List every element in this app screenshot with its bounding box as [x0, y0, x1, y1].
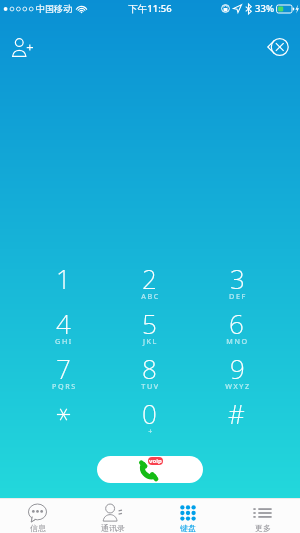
staticText: + — [148, 426, 154, 436]
button[interactable]: 4 — [20, 306, 106, 351]
button[interactable]: 5 — [106, 306, 193, 351]
staticText: TUV — [141, 381, 160, 391]
button[interactable]: 1 — [20, 261, 106, 306]
staticText: GHI — [55, 336, 73, 346]
staticText: voip — [149, 457, 162, 465]
staticText: 中国移动 — [36, 3, 72, 14]
button[interactable]: 信息 — [0, 499, 75, 533]
button[interactable]: Call — [97, 456, 203, 483]
button[interactable]: Delete — [261, 30, 295, 64]
staticText: WXYZ — [225, 381, 251, 391]
button[interactable]: 3 — [193, 261, 280, 306]
button[interactable]: 9 — [193, 351, 280, 396]
staticText: 下午11:56 — [128, 2, 172, 15]
button[interactable]: 8 — [106, 351, 193, 396]
button[interactable]: 通讯录 — [75, 499, 150, 533]
staticText: 更多 — [255, 523, 271, 533]
staticText: 8 — [142, 351, 157, 386]
staticText: JKL — [143, 336, 158, 346]
staticText: 3 — [230, 261, 245, 296]
button[interactable]: # — [193, 396, 280, 441]
staticText: 2 — [142, 261, 157, 296]
staticText: 33% — [255, 2, 274, 15]
button[interactable]: Add contact — [5, 30, 39, 64]
button[interactable]: 6 — [193, 306, 280, 351]
staticText: 0 — [142, 396, 157, 431]
staticText: ABC — [141, 291, 160, 301]
button[interactable]: 7 — [20, 351, 106, 396]
staticText: MNO — [226, 336, 249, 346]
staticText: 7 — [56, 351, 71, 386]
staticText: 1 — [56, 261, 71, 296]
staticText: 信息 — [30, 523, 46, 533]
button[interactable] — [20, 396, 106, 441]
staticText: PQRS — [52, 381, 77, 391]
button[interactable]: 更多 — [225, 499, 300, 533]
staticText: 通讯录 — [101, 523, 125, 533]
staticText: 9 — [230, 351, 245, 386]
button[interactable]: 2 — [106, 261, 193, 306]
staticText: 6 — [229, 306, 244, 341]
staticText: 键盘 — [180, 523, 196, 533]
button[interactable]: 键盘 — [150, 499, 225, 533]
staticText: 5 — [142, 306, 157, 341]
staticText: DEF — [229, 291, 247, 301]
staticText: 4 — [56, 306, 71, 341]
button[interactable]: 0 — [106, 396, 193, 441]
staticText: # — [228, 396, 245, 431]
